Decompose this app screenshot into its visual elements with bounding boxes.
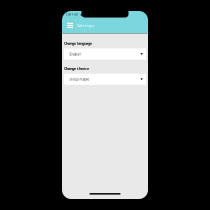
staticText: Settings — [77, 22, 94, 28]
staticText: English — [69, 52, 81, 56]
staticText: Change theme — [64, 66, 89, 71]
staticText: carrier — [66, 12, 79, 17]
button[interactable]: Menu — [65, 21, 75, 30]
staticText: Deep Purple — [69, 77, 89, 82]
button[interactable]: English — [64, 48, 146, 60]
button[interactable]: Deep Purple — [64, 74, 146, 85]
staticText: Change language — [64, 41, 92, 46]
